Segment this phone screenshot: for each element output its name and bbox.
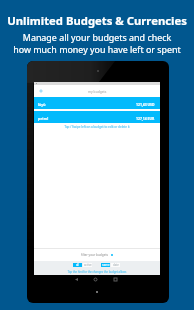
- button[interactable]: active: [83, 263, 92, 267]
- staticText: name: [102, 263, 110, 267]
- staticText: lüyü: [38, 102, 46, 107]
- staticText: 127,14 EUR: [136, 116, 155, 121]
- button[interactable]: petrol: [34, 111, 160, 123]
- staticText: my budgets: [88, 89, 107, 93]
- staticText: all: [76, 263, 80, 267]
- staticText: Tap / Swipe left on a budget to edit or …: [34, 125, 160, 129]
- staticText: Tap the hint for the changes the budget …: [34, 270, 160, 274]
- staticText: Manage all your budgets and check how mu…: [0, 31, 194, 55]
- staticText: date: [113, 263, 119, 267]
- button[interactable]: Back: [72, 275, 81, 284]
- button[interactable]: filter your budgets: [34, 253, 160, 257]
- button[interactable]: Add budget: [35, 85, 47, 97]
- button[interactable]: lüyü: [34, 97, 160, 109]
- staticText: 121,43 USD: [136, 102, 155, 107]
- staticText: petrol: [38, 116, 49, 121]
- button[interactable]: all: [73, 263, 82, 267]
- button[interactable]: Recent apps: [111, 275, 120, 284]
- staticText: filter your budgets: [81, 253, 109, 257]
- button[interactable]: Home: [91, 275, 100, 284]
- staticText: active: [84, 263, 92, 267]
- button[interactable]: name: [101, 263, 110, 267]
- staticText: Unlimited Budgets & Currencies: [0, 13, 194, 28]
- button[interactable]: date: [111, 263, 120, 267]
